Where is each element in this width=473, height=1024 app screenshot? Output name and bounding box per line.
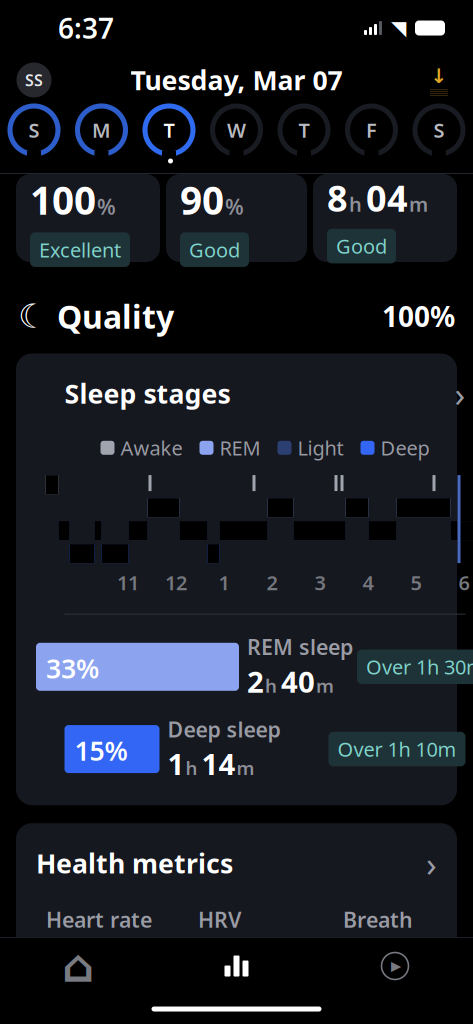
button[interactable]: Sleep stages (16, 353, 457, 805)
button[interactable]: F (343, 102, 399, 158)
button[interactable]: M (73, 102, 129, 158)
staticText: REM sleep (247, 633, 353, 661)
staticText: Light (297, 434, 343, 461)
staticText: T (298, 117, 309, 143)
staticText: m (236, 755, 254, 780)
staticText: Tuesday, Mar 07 (130, 62, 342, 98)
staticText: ☾ (18, 297, 48, 335)
staticText: /min (389, 977, 427, 1024)
staticText: 4 (362, 569, 373, 596)
staticText: 1 (167, 744, 184, 783)
staticText: 100% (382, 298, 455, 335)
staticText: REM (219, 434, 260, 461)
staticText: F (366, 117, 377, 143)
staticText: % (97, 192, 116, 220)
staticText: Over 1h 10m (337, 736, 456, 762)
staticText: ▶ (391, 958, 401, 973)
staticText: Deep (380, 434, 429, 461)
staticText: m (409, 191, 428, 217)
staticText: Heart rate (46, 905, 152, 934)
staticText: 90 (180, 174, 224, 225)
staticText: ⌂ (62, 940, 94, 992)
button[interactable]: S (6, 102, 62, 158)
button[interactable]: Health metrics (16, 823, 457, 1024)
staticText: 8 (327, 174, 348, 222)
staticText: 5 (410, 569, 421, 596)
staticText: Over 1h 30m (366, 653, 473, 680)
staticText: Health metrics (36, 845, 233, 881)
button[interactable]: T (276, 102, 332, 158)
staticText: ms (236, 948, 265, 975)
staticText: h (185, 755, 197, 780)
button[interactable]: Play sounds (345, 942, 445, 990)
button[interactable]: W (208, 102, 264, 158)
staticText: m (316, 673, 334, 698)
button[interactable]: 100 (16, 174, 160, 262)
staticText: 1 (218, 569, 229, 596)
staticText: S (433, 117, 444, 143)
staticText: Good (336, 233, 387, 259)
staticText: ↓ (430, 65, 447, 87)
staticText: % (225, 192, 244, 220)
staticText: 6:37 (58, 9, 114, 47)
button[interactable]: T (141, 102, 197, 158)
staticText: Above 29 ms (207, 986, 326, 1013)
staticText: Excellent (39, 236, 121, 263)
staticText: 2 (247, 662, 264, 701)
staticText: Below 62 bpm (55, 986, 187, 1013)
staticText: T (163, 117, 174, 143)
staticText: 2 (266, 569, 277, 596)
button[interactable]: Download (417, 58, 461, 102)
button[interactable]: Profile (12, 58, 56, 102)
staticText: 6 (458, 569, 469, 596)
staticText: 3 (314, 569, 325, 596)
staticText: 11 (117, 569, 139, 596)
staticText: › (454, 370, 465, 416)
button[interactable]: 8 (313, 174, 457, 262)
staticText: 04 (366, 174, 408, 222)
staticText: ◥ (391, 17, 406, 39)
staticText: 40 (281, 662, 315, 701)
staticText: 100 (30, 174, 96, 225)
staticText: Quality (57, 295, 174, 337)
staticText: 33% (46, 650, 99, 686)
staticText: Breath rate (343, 905, 413, 962)
button[interactable]: Home (28, 942, 128, 990)
staticText: Sleep stages (64, 376, 230, 411)
staticText: 15% (74, 733, 127, 768)
staticText: 12 (165, 569, 187, 596)
staticText: SS (25, 69, 43, 91)
staticText: Good (189, 236, 240, 263)
staticText: 13.5 (343, 967, 385, 1024)
staticText: h (265, 673, 277, 698)
button[interactable]: 90 (166, 174, 307, 262)
staticText: 61 (46, 939, 80, 978)
staticText: h (349, 191, 362, 217)
staticText: Awake (120, 434, 182, 461)
staticText: W (227, 117, 246, 143)
staticText: › (426, 840, 437, 886)
staticText: Deep sleep (167, 715, 280, 743)
staticText: HRV (198, 905, 241, 934)
staticText: M (92, 117, 111, 143)
staticText: 48 (198, 939, 232, 978)
button[interactable]: Statistics (186, 942, 286, 990)
staticText: bpm (84, 948, 129, 975)
button[interactable]: S (411, 102, 467, 158)
staticText: S (28, 117, 39, 143)
staticText: 14 (201, 744, 235, 783)
